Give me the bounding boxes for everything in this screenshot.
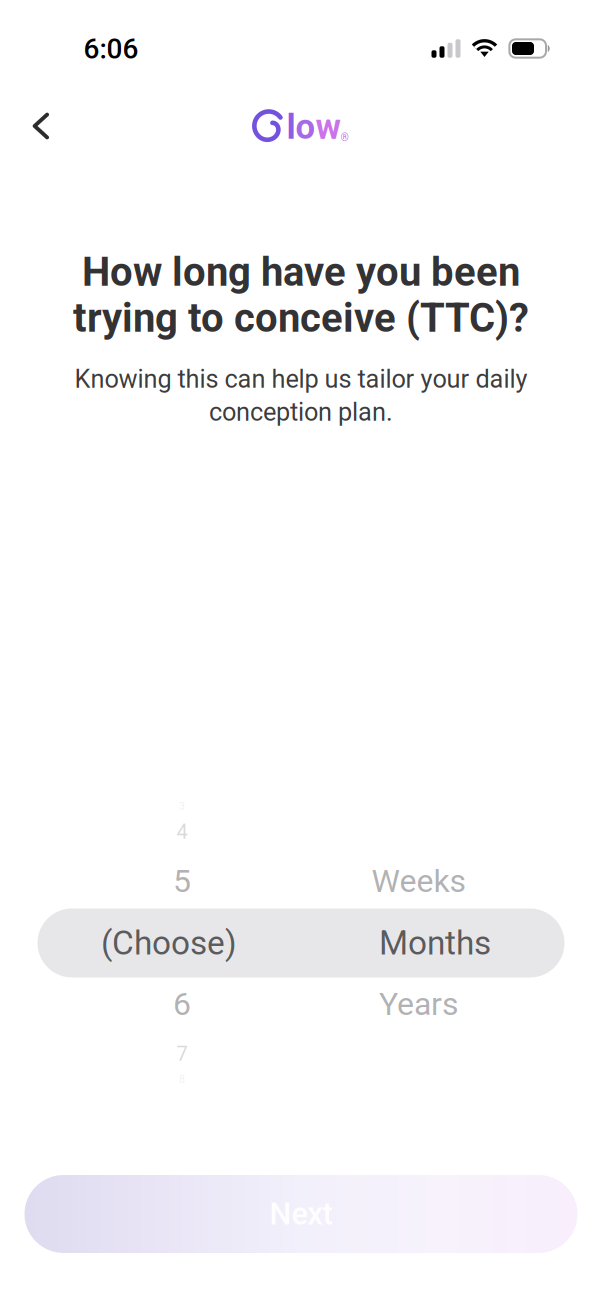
staticText: conception plan.	[209, 397, 393, 427]
staticText: Months	[379, 923, 491, 963]
staticText: Next	[269, 1196, 332, 1232]
button[interactable]: Next	[24, 1175, 577, 1253]
button[interactable]: Back	[13, 98, 69, 154]
staticText: 4	[176, 820, 187, 844]
staticText: 3	[179, 800, 185, 812]
staticText: 8	[179, 1073, 185, 1085]
staticText: l	[286, 107, 295, 147]
staticText: o	[295, 107, 315, 147]
button[interactable]: How long trying to conceive	[0, 0, 602, 1308]
staticText: Years	[379, 985, 459, 1023]
staticText: 6	[173, 985, 191, 1023]
staticText: w	[315, 107, 340, 147]
staticText: How long have you been	[82, 249, 520, 295]
staticText: (Choose)	[101, 923, 237, 963]
staticText: 7	[176, 1042, 187, 1066]
staticText: Knowing this can help us tailor your dai…	[74, 364, 527, 394]
staticText: 6:06	[83, 33, 138, 65]
staticText: trying to conceive (TTC)?	[73, 295, 529, 341]
staticText: ®	[340, 131, 348, 144]
staticText: 5	[173, 862, 191, 900]
staticText: Weeks	[371, 862, 466, 900]
